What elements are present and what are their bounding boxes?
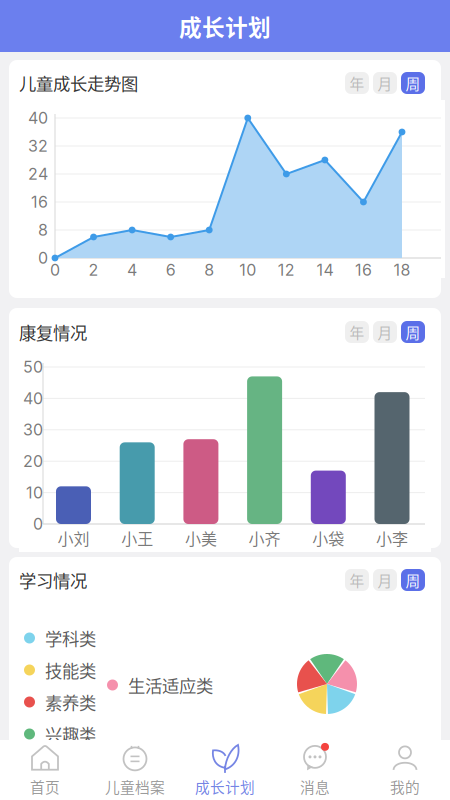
staticText: 首页 (30, 776, 60, 797)
button[interactable]: 消息 (270, 740, 360, 800)
button[interactable]: 月 (373, 72, 397, 94)
staticText: 18 (393, 260, 410, 280)
staticText: 0 (50, 260, 60, 280)
button[interactable]: 周 (401, 72, 425, 94)
button[interactable]: 年 (345, 321, 369, 343)
staticText: 小王 (121, 526, 153, 550)
staticText: 小齐 (249, 526, 281, 550)
button[interactable]: 年 (345, 72, 369, 94)
staticText: 儿童成长走势图 (19, 70, 138, 96)
staticText: 14 (316, 260, 333, 280)
staticText: 40 (28, 108, 48, 128)
staticText: 年 (349, 72, 364, 94)
staticText: 年 (349, 569, 364, 591)
staticText: 素养类 (45, 689, 96, 715)
staticText: 学习情况 (19, 567, 87, 593)
staticText: 10 (239, 260, 256, 280)
staticText: 24 (28, 164, 48, 184)
staticText: 8 (204, 260, 214, 280)
staticText: 6 (166, 260, 176, 280)
staticText: 周 (405, 72, 420, 94)
button[interactable]: 儿童档案 (90, 740, 180, 800)
staticText: 技能类 (45, 657, 96, 683)
staticText: 40 (23, 389, 43, 408)
staticText: 12 (278, 260, 295, 280)
button[interactable]: 首页 (0, 740, 90, 800)
button[interactable]: 我的 (360, 740, 450, 800)
staticText: 50 (23, 357, 43, 377)
staticText: 2 (89, 260, 99, 280)
staticText: 兴趣类 (45, 721, 96, 747)
button[interactable]: 周 (401, 321, 425, 343)
staticText: 周 (405, 569, 420, 591)
staticText: 月 (377, 569, 392, 591)
staticText: 32 (28, 136, 48, 156)
button[interactable]: 月 (373, 569, 397, 591)
staticText: 小袋 (312, 526, 344, 550)
staticText: 16 (31, 192, 48, 212)
staticText: 0 (33, 514, 43, 534)
staticText: 0 (38, 248, 48, 268)
staticText: 30 (23, 420, 43, 439)
staticText: 生活适应类 (128, 672, 213, 698)
button[interactable]: 年 (345, 569, 369, 591)
staticText: 我的 (390, 776, 420, 797)
staticText: 儿童档案 (105, 776, 165, 797)
staticText: 小刘 (57, 526, 89, 550)
staticText: 成长计划 (179, 10, 271, 42)
staticText: 4 (127, 260, 137, 280)
staticText: 学科类 (45, 625, 96, 651)
staticText: 月 (377, 321, 392, 343)
staticText: 年 (349, 321, 364, 343)
staticText: 周 (405, 321, 420, 343)
button[interactable]: 月 (373, 321, 397, 343)
staticText: 16 (355, 260, 372, 280)
staticText: 10 (26, 483, 43, 502)
staticText: 月 (377, 72, 392, 94)
button[interactable]: 成长计划 (180, 740, 270, 800)
staticText: 消息 (300, 776, 330, 797)
staticText: 8 (38, 220, 48, 240)
button[interactable]: 周 (401, 569, 425, 591)
staticText: 小李 (376, 526, 408, 550)
staticText: 20 (23, 451, 43, 471)
staticText: 成长计划 (195, 776, 255, 797)
staticText: 小美 (185, 526, 217, 550)
staticText: 康复情况 (19, 319, 87, 345)
